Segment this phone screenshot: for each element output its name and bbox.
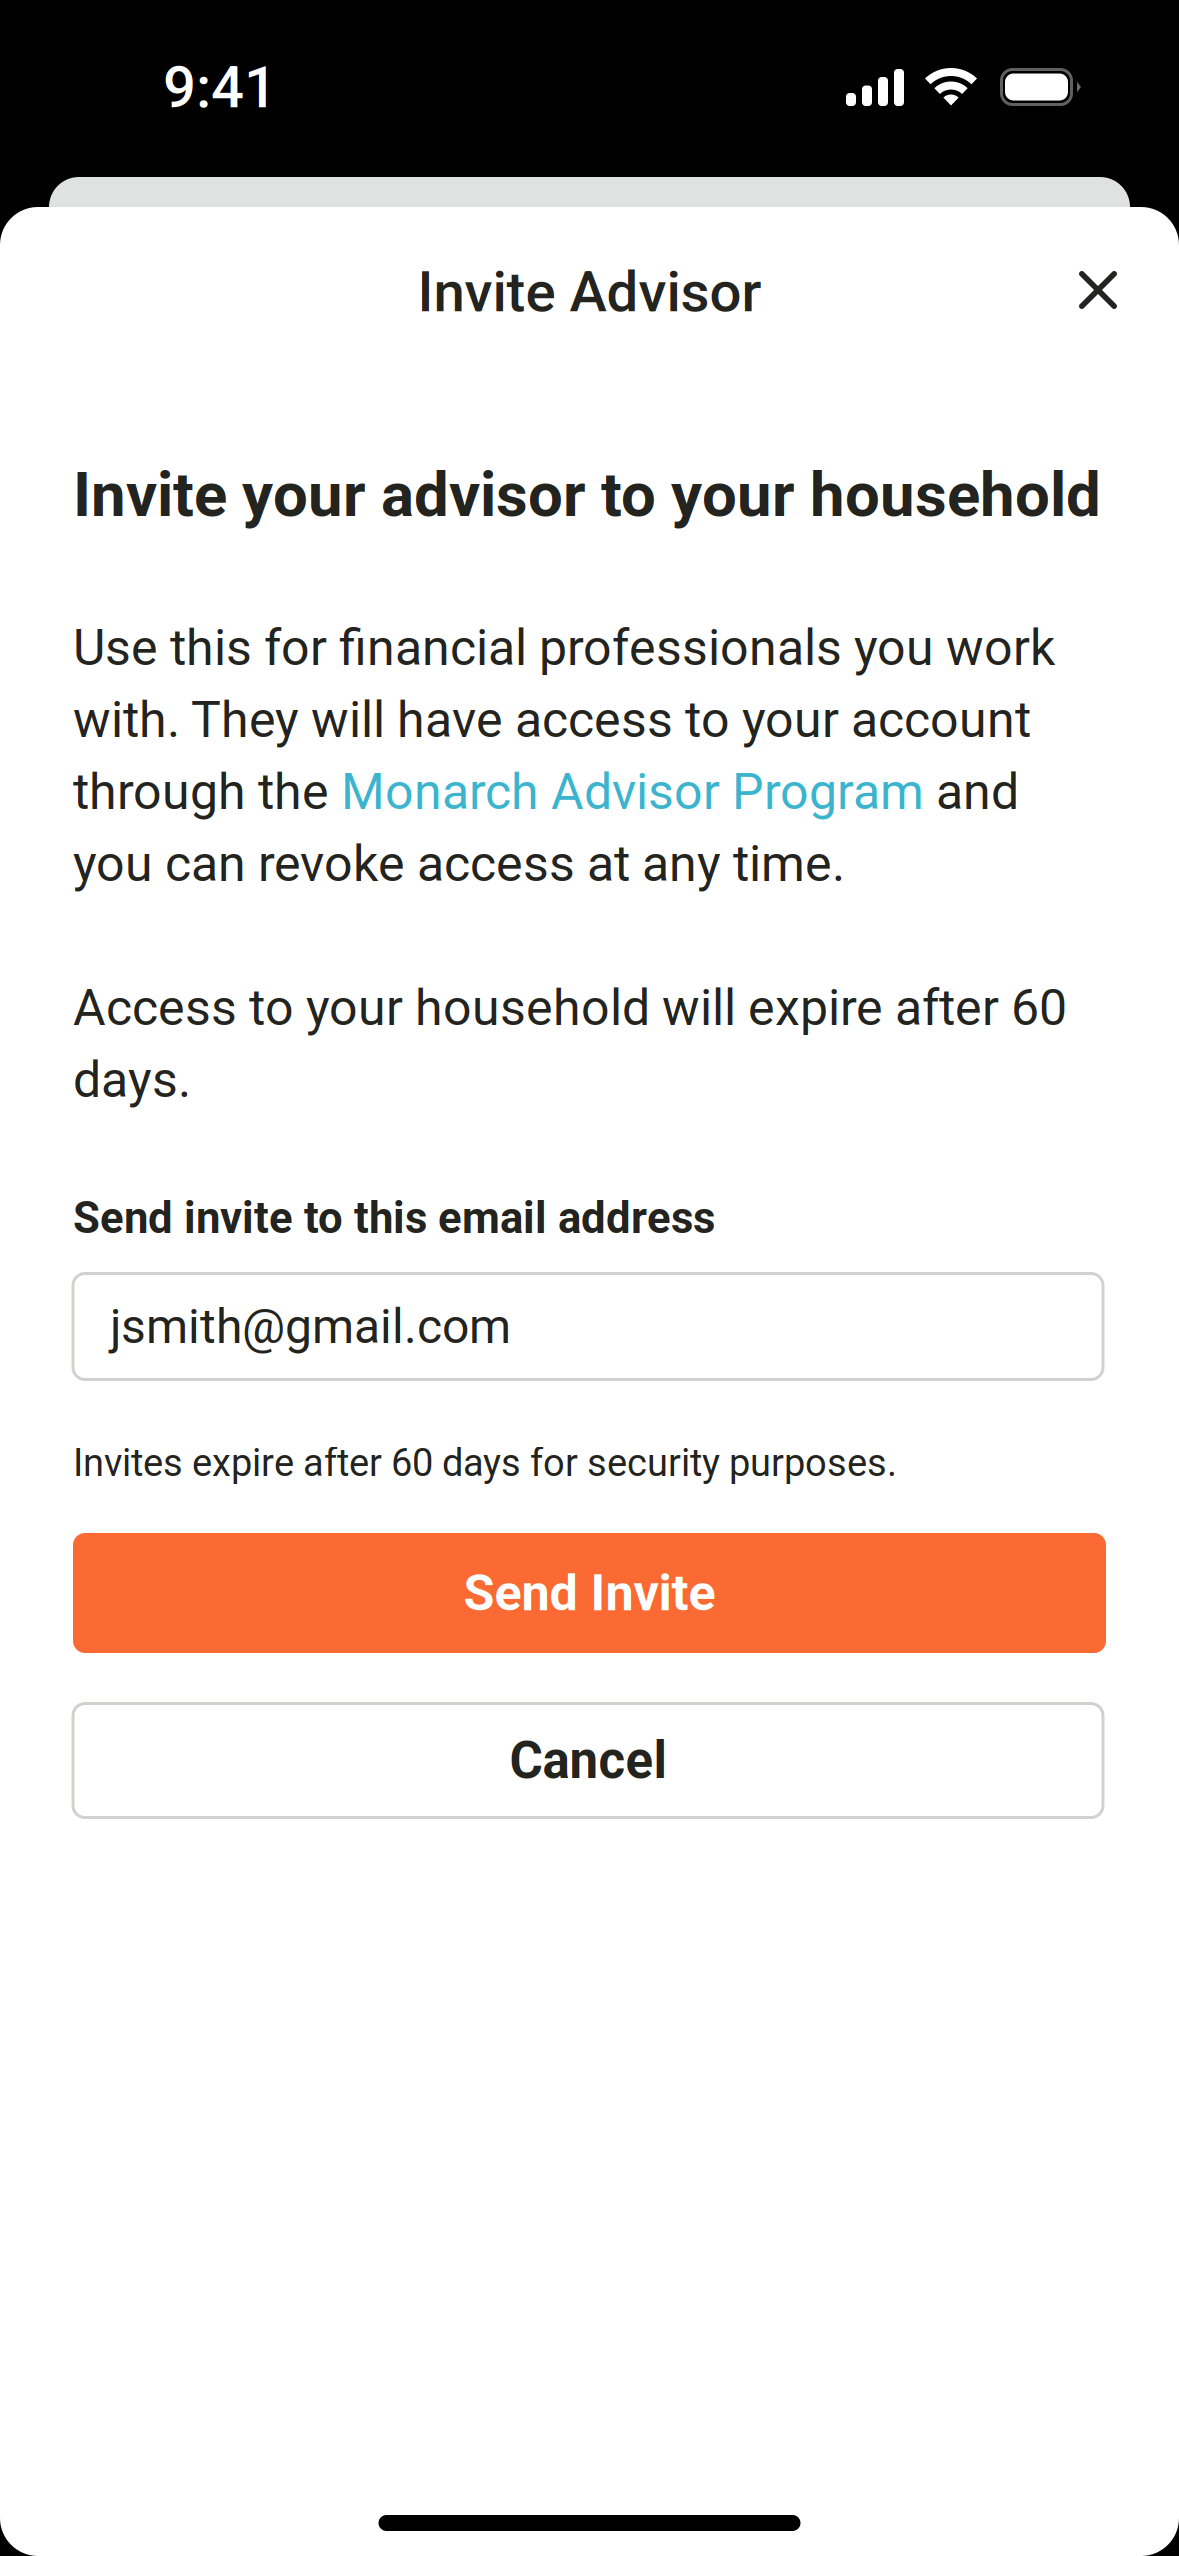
staticText: 9:41 <box>163 53 277 121</box>
button[interactable]: Cancel <box>73 1702 1106 1819</box>
staticText: and <box>924 763 1019 821</box>
button[interactable]: Send Invite <box>73 1533 1106 1653</box>
staticText: through the <box>73 763 341 821</box>
staticText: with. They will have access to your acco… <box>73 691 1031 749</box>
staticText: Send invite to this email address <box>73 1192 715 1244</box>
staticText: Invite your advisor to your household <box>73 459 1101 531</box>
staticText: Send Invite <box>463 1563 715 1622</box>
staticText: Monarch Advisor Program <box>341 763 924 821</box>
staticText: Access to your household will expire aft… <box>73 979 1067 1037</box>
staticText: Use this for financial professionals you… <box>73 619 1055 677</box>
button[interactable]: Close <box>1031 223 1165 357</box>
staticText: Cancel <box>509 1731 666 1790</box>
staticText: Invites expire after 60 days for securit… <box>73 1441 897 1485</box>
staticText: jsmith@gmail.com <box>110 1298 511 1355</box>
staticText: Invite Advisor <box>417 259 761 325</box>
staticText: you can revoke access at any time. <box>73 835 845 893</box>
staticText: days. <box>73 1051 191 1109</box>
